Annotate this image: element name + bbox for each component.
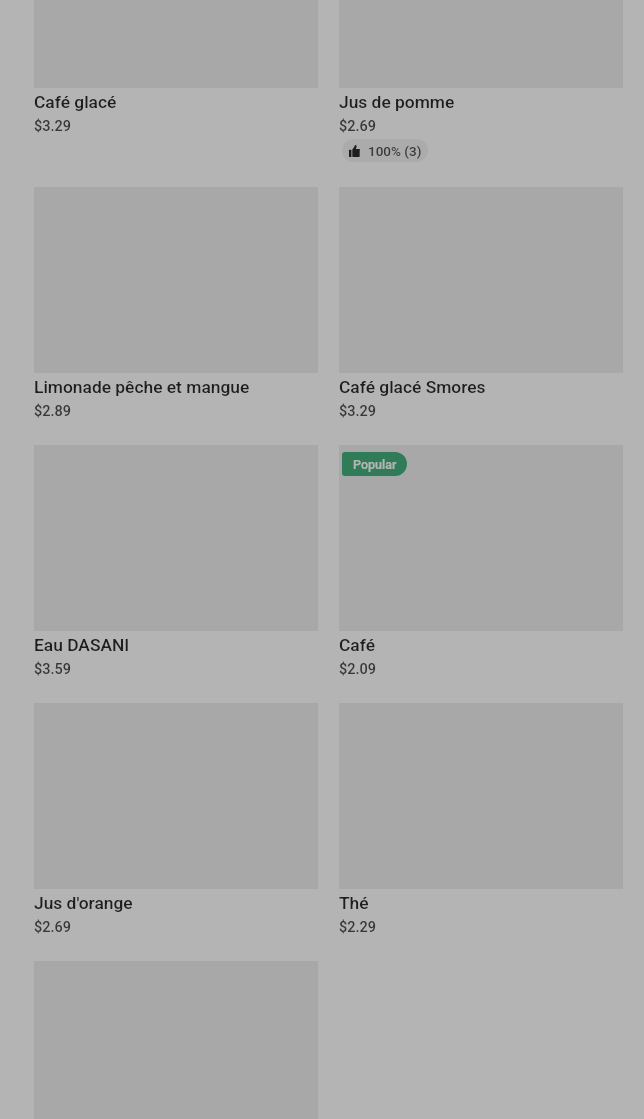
- staticText: $3.29: [34, 118, 71, 135]
- button[interactable]: Thé: [339, 703, 623, 961]
- staticText: Café: [339, 635, 375, 655]
- staticText: Popular: [353, 457, 397, 472]
- staticText: Café glacé: [34, 92, 117, 112]
- staticText: $2.29: [339, 919, 376, 936]
- staticText: 100% (3): [368, 143, 422, 159]
- staticText: Café glacé Smores: [339, 377, 486, 397]
- staticText: Thé: [339, 893, 369, 913]
- button[interactable]: Eau DASANI: [34, 445, 318, 703]
- staticText: Jus d'orange: [34, 893, 133, 913]
- staticText: $2.69: [339, 118, 376, 135]
- button[interactable]: Limonade pêche et mangue: [34, 187, 318, 445]
- staticText: $2.09: [339, 661, 376, 678]
- button[interactable]: Jus d'orange: [34, 703, 318, 961]
- staticText: $3.59: [34, 661, 71, 678]
- button[interactable]: Jus de pomme: [339, 0, 623, 187]
- staticText: Jus de pomme: [339, 92, 455, 112]
- button[interactable]: Café glacé Smores: [339, 187, 623, 445]
- staticText: $2.89: [34, 403, 71, 420]
- staticText: $2.69: [34, 919, 71, 936]
- button[interactable]: Café glacé: [34, 0, 318, 160]
- button[interactable]: Popular: [339, 445, 623, 703]
- staticText: Eau DASANI: [34, 635, 130, 655]
- staticText: $3.29: [339, 403, 376, 420]
- staticText: Limonade pêche et mangue: [34, 377, 250, 397]
